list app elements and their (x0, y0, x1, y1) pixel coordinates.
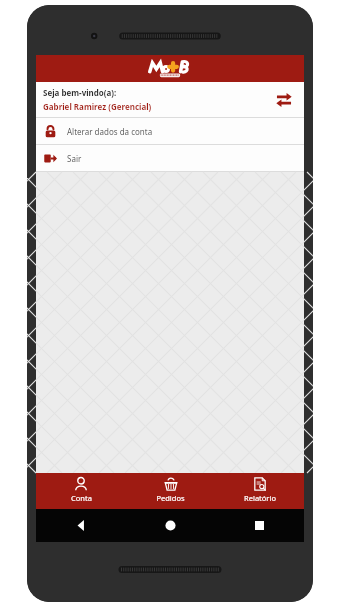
button[interactable]: Alterar dados da conta (36, 118, 304, 144)
staticText: Alterar dados da conta (67, 126, 153, 137)
button[interactable]: Sair (36, 145, 304, 171)
staticText: Pedidos (156, 493, 185, 503)
button[interactable]: Trocar conta (271, 87, 297, 113)
staticText: Sair (67, 153, 82, 164)
button[interactable]: Pedidos (126, 473, 215, 509)
button[interactable]: Início (126, 509, 215, 542)
button[interactable]: Conta (36, 473, 126, 509)
button[interactable]: Relatório (215, 473, 304, 509)
button[interactable]: Recentes (215, 509, 304, 542)
button[interactable]: Seja bem-vindo(a): (36, 82, 304, 117)
button[interactable]: Voltar (36, 509, 126, 542)
staticText: Conta (71, 493, 92, 503)
staticText: Seja bem-vindo(a): (43, 87, 117, 98)
staticText: Gabriel Ramirez (Gerencial) (43, 101, 152, 112)
staticText: Relatório (244, 493, 276, 503)
